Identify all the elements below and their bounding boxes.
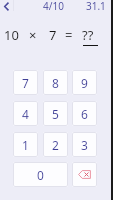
staticText: 7 (49, 26, 57, 44)
button[interactable]: 4 (13, 101, 38, 126)
staticText: 31.1 (86, 0, 106, 13)
staticText: 4 (22, 106, 29, 122)
staticText: 9 (81, 75, 88, 91)
button[interactable]: Backspace (72, 162, 97, 187)
staticText: 0 (37, 167, 44, 183)
staticText: 2 (52, 137, 59, 153)
button[interactable]: 6 (72, 101, 97, 126)
staticText: 3 (81, 137, 88, 153)
staticText: 1 (22, 137, 29, 153)
button[interactable]: 1 (13, 132, 38, 157)
button[interactable]: 8 (43, 70, 68, 95)
staticText: 8 (52, 75, 59, 91)
button[interactable]: 5 (43, 101, 68, 126)
button[interactable]: 3 (72, 132, 97, 157)
staticText: 5 (52, 106, 59, 122)
staticText: 7 (22, 75, 29, 91)
staticText: 4/10 (43, 0, 64, 13)
button[interactable]: Back (0, 0, 13, 12)
button[interactable]: 7 (13, 70, 38, 95)
staticText: 6 (81, 106, 88, 122)
staticText: = (65, 26, 73, 44)
staticText: ?? (82, 26, 94, 44)
staticText: 10 (4, 26, 19, 44)
button[interactable]: 9 (72, 70, 97, 95)
button[interactable]: 0 (13, 162, 68, 187)
staticText: × (29, 26, 37, 44)
button[interactable]: 2 (43, 132, 68, 157)
